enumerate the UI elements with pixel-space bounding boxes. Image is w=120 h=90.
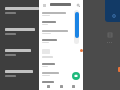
button[interactable]: Menu xyxy=(41,2,47,8)
button[interactable]: Chats xyxy=(45,83,52,90)
button[interactable]: Menu xyxy=(39,0,83,90)
button[interactable]: Search xyxy=(75,2,81,8)
button[interactable] xyxy=(74,10,79,44)
button[interactable] xyxy=(105,0,120,22)
button[interactable]: App icon xyxy=(107,32,112,37)
button[interactable]: More options xyxy=(107,42,112,43)
button[interactable]: Calls xyxy=(58,83,65,90)
button[interactable]: New message xyxy=(72,72,80,80)
button[interactable]: Settings xyxy=(70,83,77,90)
button[interactable] xyxy=(0,0,39,90)
